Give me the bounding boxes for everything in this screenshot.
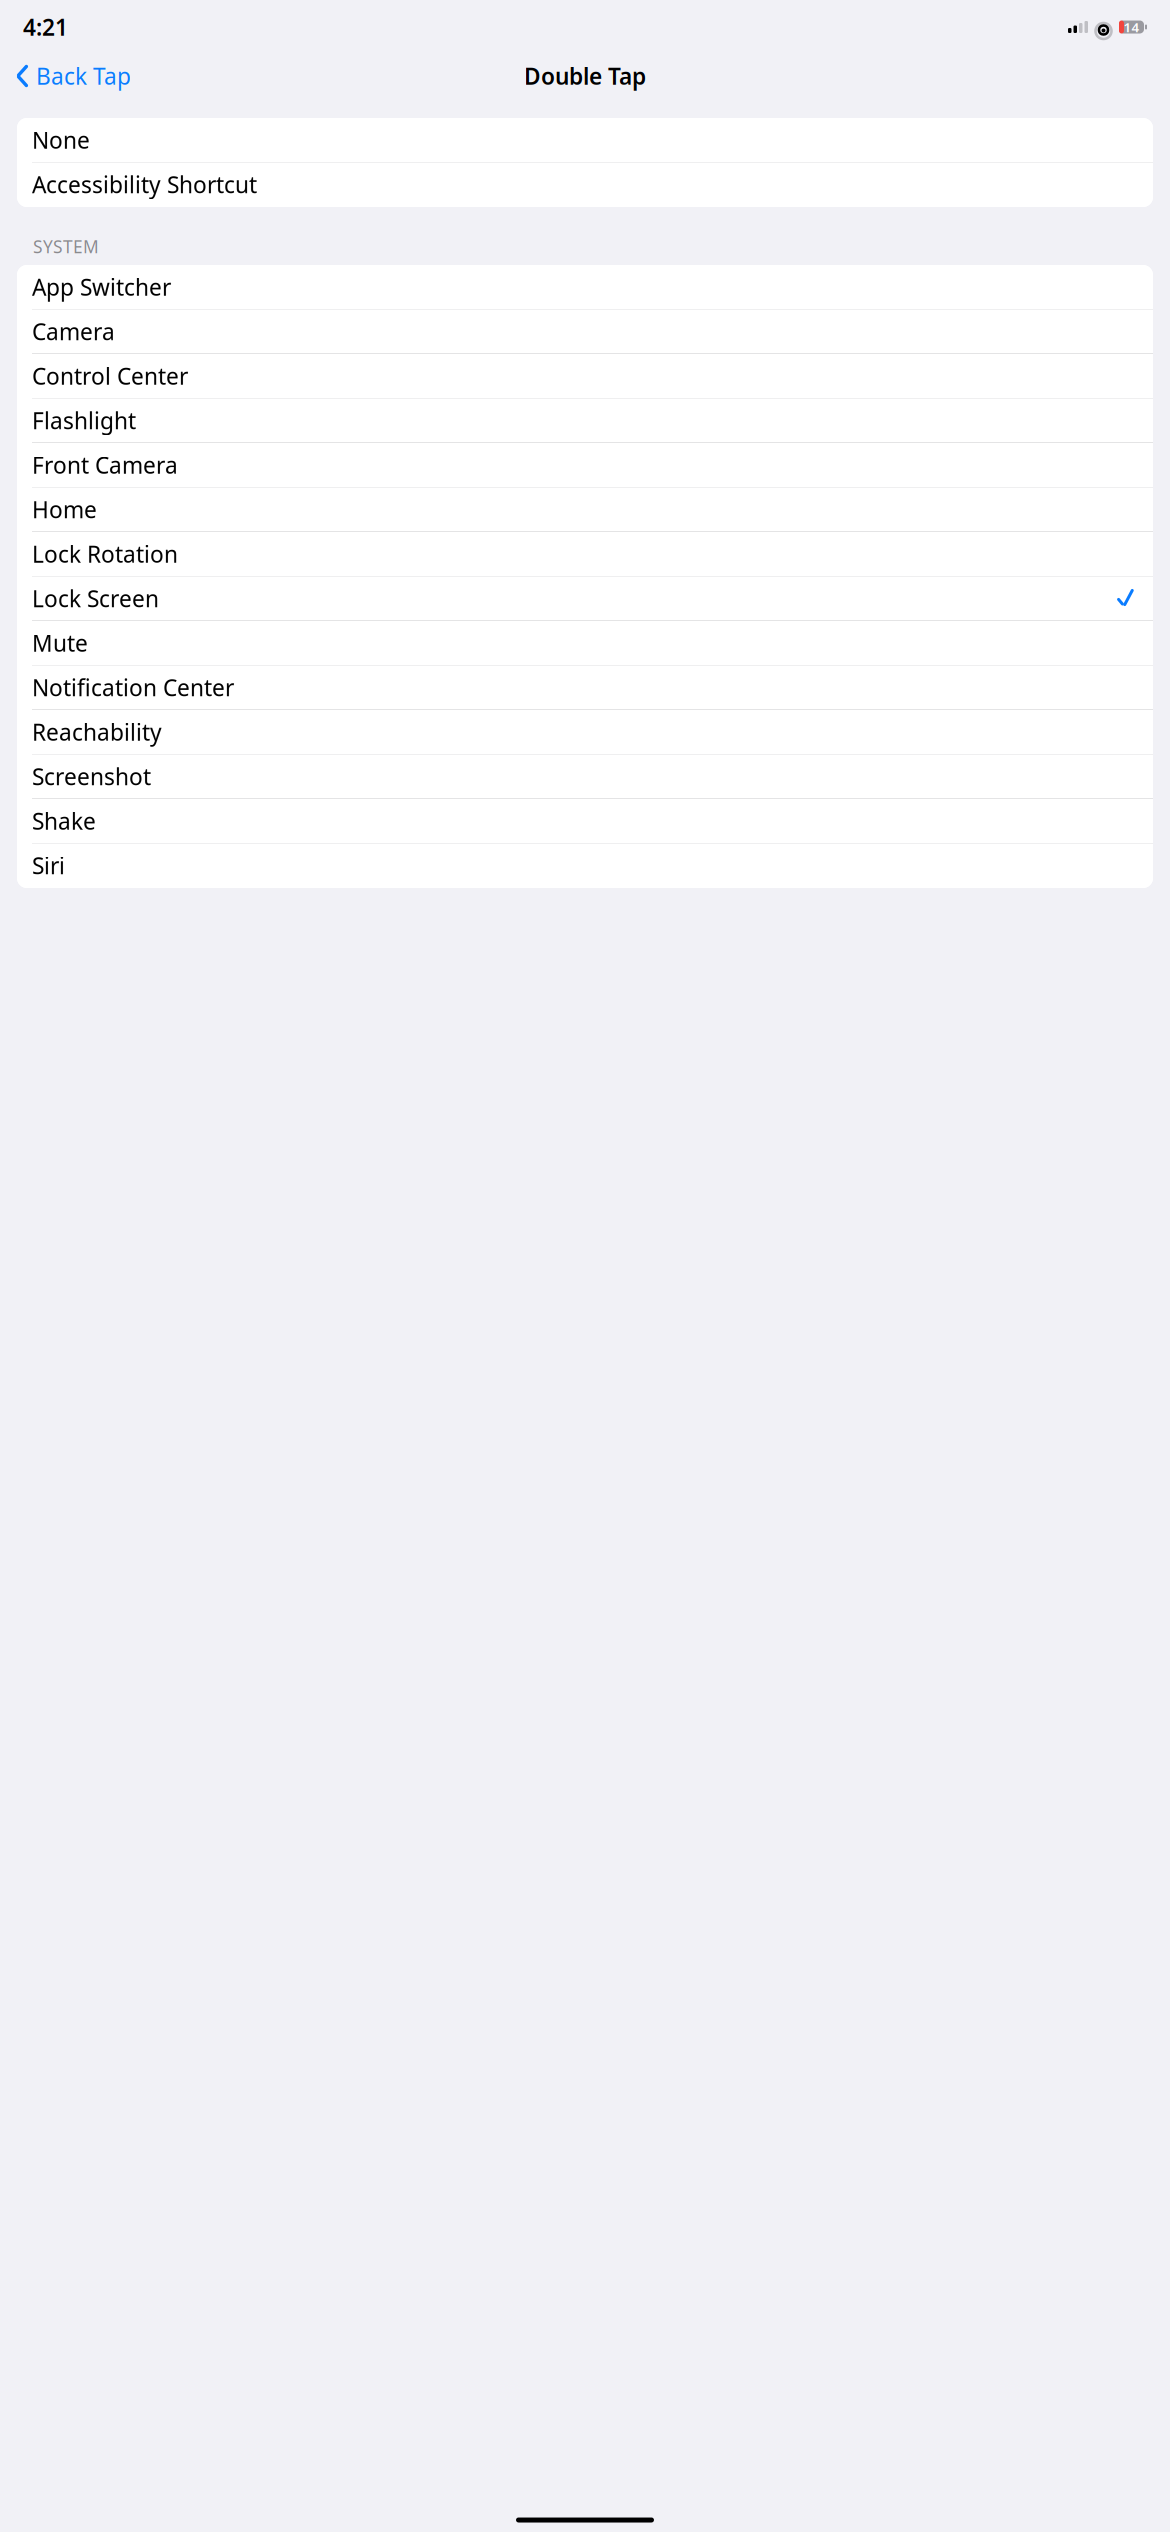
staticText: Camera — [32, 316, 115, 347]
button[interactable]: Front Camera — [17, 443, 1153, 487]
button[interactable]: App Switcher — [17, 265, 1153, 309]
button[interactable]: Home — [17, 487, 1153, 532]
staticText: SYSTEM — [33, 235, 99, 258]
button[interactable]: None — [17, 118, 1153, 162]
staticText: 4:21 — [23, 12, 68, 42]
staticText: Lock Rotation — [32, 539, 178, 569]
staticText: Screenshot — [32, 761, 151, 792]
staticText: None — [32, 125, 90, 155]
staticText: Flashlight — [32, 405, 136, 436]
button[interactable]: Flashlight — [17, 398, 1153, 443]
button[interactable]: Notification Center — [17, 665, 1153, 710]
staticText: Lock Screen — [32, 583, 159, 614]
staticText: Reachability — [32, 717, 162, 747]
button[interactable]: Reachability — [17, 710, 1153, 754]
button[interactable]: Back Tap — [8, 55, 131, 97]
staticText: Double Tap — [524, 61, 646, 91]
button[interactable]: Control Center — [17, 354, 1153, 398]
button[interactable]: Lock Screen — [17, 576, 1153, 621]
button[interactable]: Accessibility Shortcut — [17, 162, 1153, 207]
staticText: Accessibility Shortcut — [32, 169, 257, 199]
staticText: Home — [32, 494, 97, 525]
staticText: Control Center — [32, 361, 188, 391]
staticText: Mute — [32, 628, 88, 658]
staticText: Notification Center — [32, 672, 234, 703]
button[interactable]: Shake — [17, 799, 1153, 843]
button[interactable]: Lock Rotation — [17, 532, 1153, 576]
staticText: 14 — [1123, 18, 1139, 36]
button[interactable]: Mute — [17, 621, 1153, 665]
button[interactable]: Camera — [17, 309, 1153, 354]
staticText: Front Camera — [32, 450, 178, 480]
staticText: App Switcher — [32, 272, 171, 302]
staticText: Siri — [32, 850, 65, 881]
button[interactable]: Screenshot — [17, 754, 1153, 799]
staticText: Back Tap — [36, 61, 131, 91]
staticText: Shake — [32, 806, 96, 836]
button[interactable]: Siri — [17, 843, 1153, 888]
